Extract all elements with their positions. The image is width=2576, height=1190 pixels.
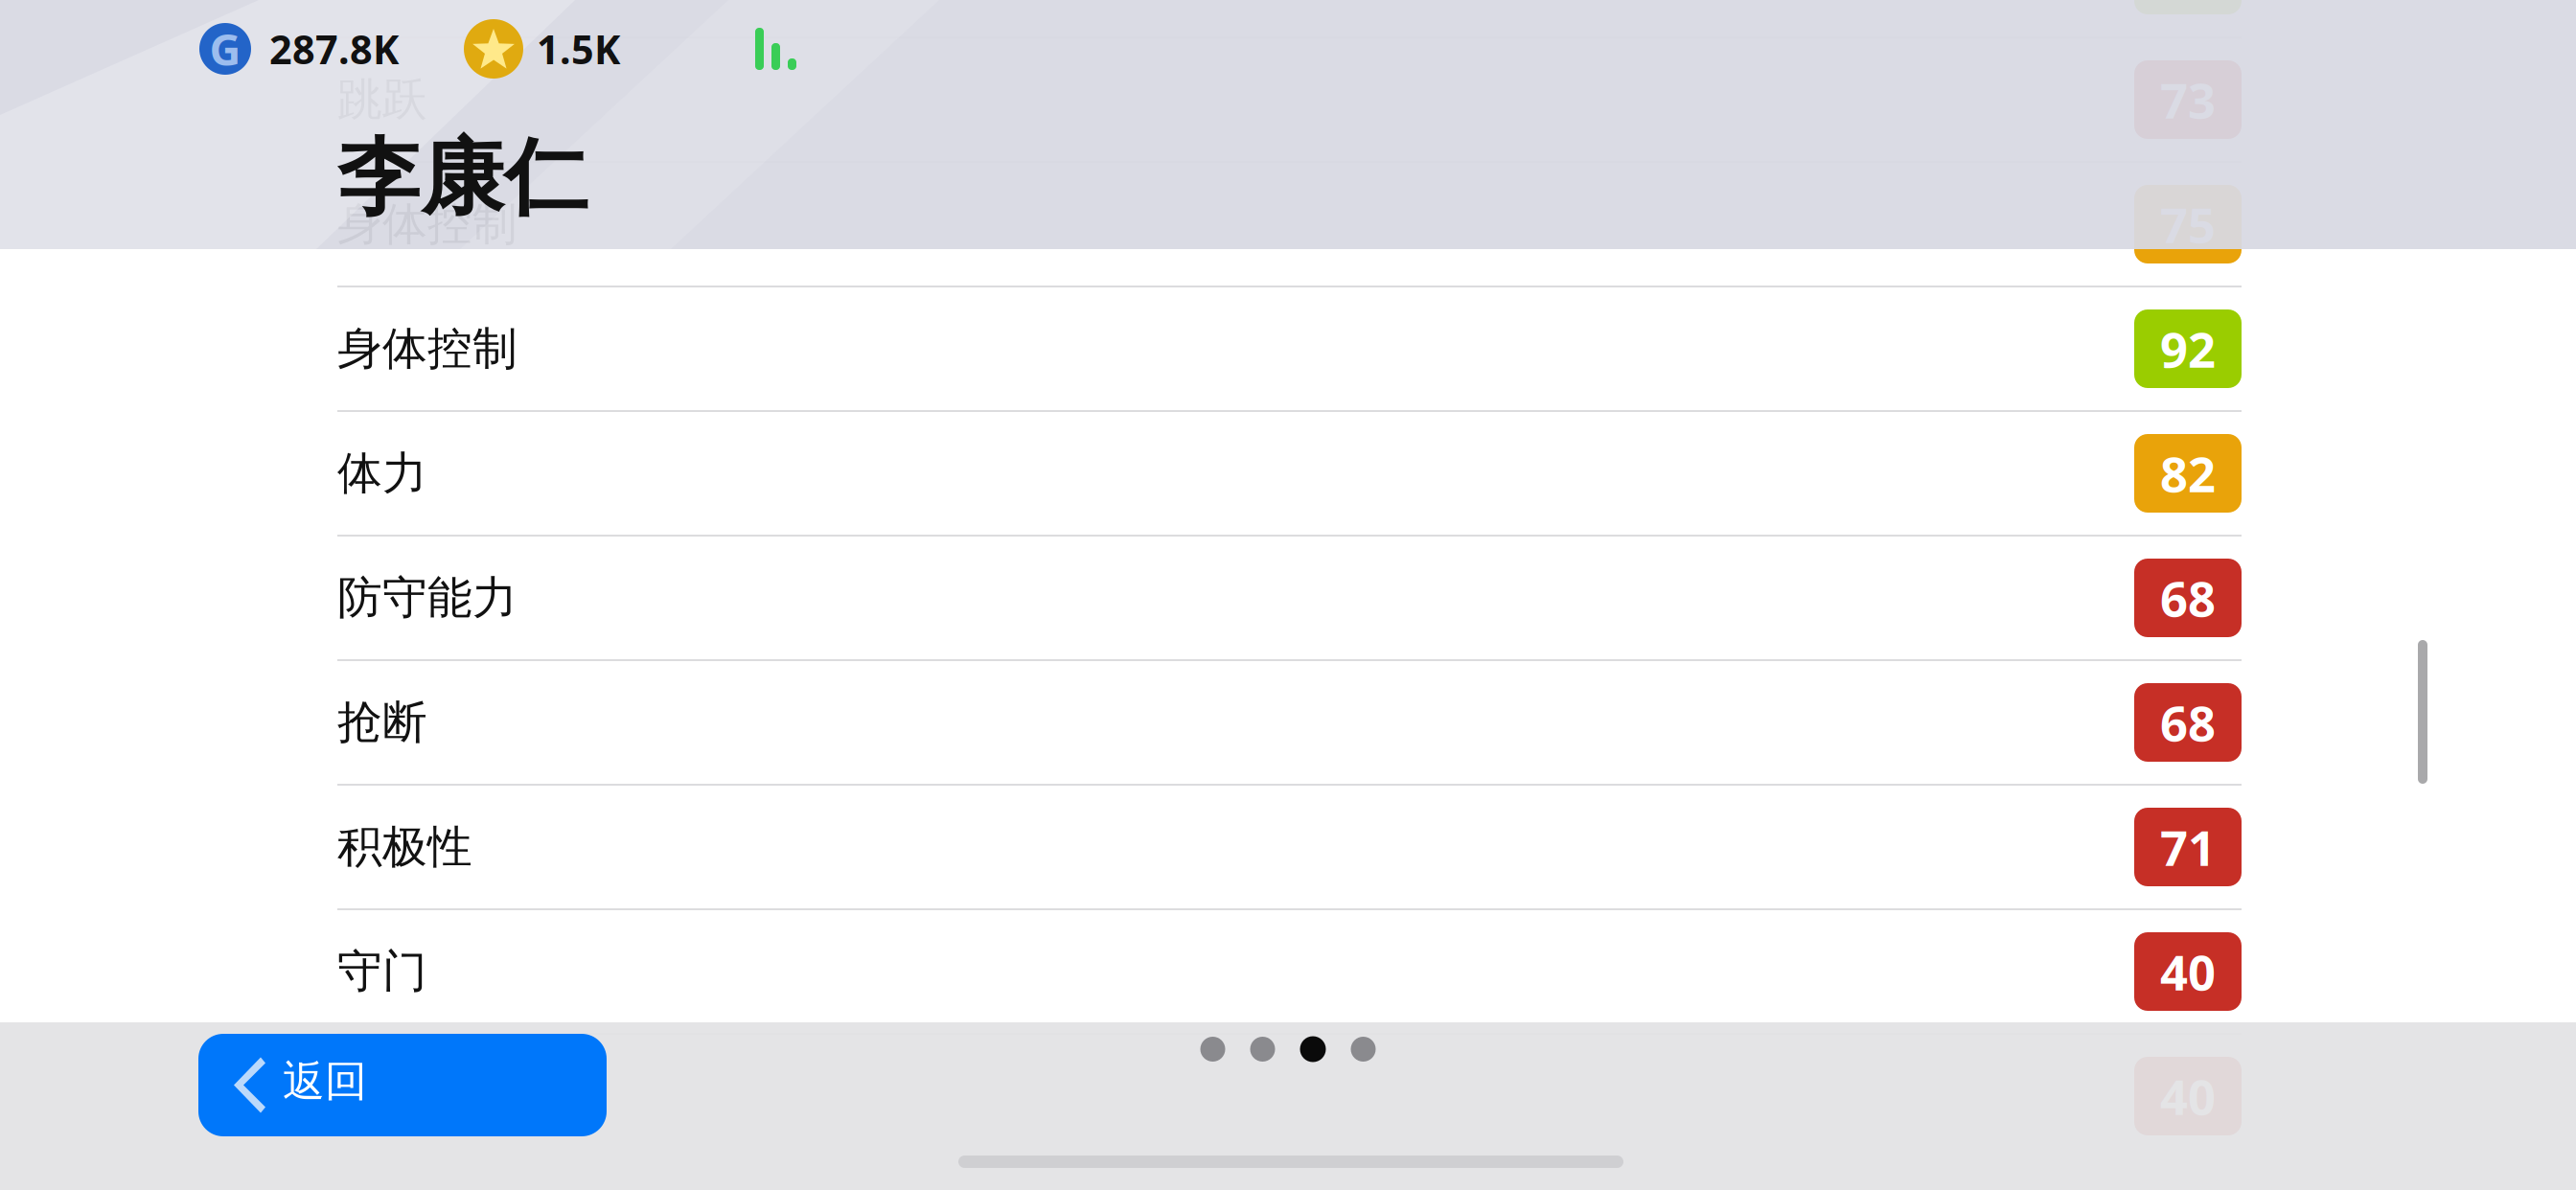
staticText: 82 [2160,441,2216,506]
button[interactable]: Page 4 [1351,1037,1376,1062]
staticText: G [209,20,241,78]
button[interactable]: 返回 [198,1034,607,1136]
button[interactable]: 扑救 [337,1033,2242,1157]
staticText: 287.8K [269,23,399,75]
staticText: 40 [2160,939,2216,1004]
staticText: 积极性 [337,819,472,874]
staticText: 守门 [337,944,427,999]
staticText: 68 [2160,566,2216,630]
button[interactable]: 身体控制 [337,286,2242,410]
staticText: 73 [2160,67,2216,132]
staticText: 返回 [283,1055,367,1107]
button[interactable]: 1.5K [464,19,620,79]
staticText: 防守能力 [337,570,517,625]
staticText: 李康仁 [337,127,587,229]
staticText: 92 [2160,317,2216,381]
button[interactable]: Page 1 [1200,1037,1225,1062]
button[interactable]: 速度 [337,0,2242,36]
button[interactable]: 跳跃 [337,36,2242,161]
button[interactable]: 体力 [337,410,2242,535]
staticText: 75 [2160,192,2216,256]
staticText: 扑救 [337,1069,427,1124]
button[interactable]: 积极性 [337,784,2242,908]
staticText: 抢断 [337,695,427,750]
staticText: 体力 [337,446,427,501]
button[interactable]: 抢断 [337,659,2242,784]
button[interactable]: 守门 [337,908,2242,1033]
button[interactable]: Page 2 [1250,1037,1275,1062]
staticText: 身体控制 [337,197,517,252]
staticText: 跳跃 [337,72,427,127]
staticText: 身体控制 [337,321,517,376]
staticText: 68 [2160,690,2216,755]
button[interactable]: 防守能力 [337,535,2242,659]
button[interactable]: G [199,23,399,75]
staticText: 1.5K [537,23,620,75]
button[interactable]: 身体控制 [337,161,2242,286]
staticText: 40 [2160,1064,2216,1128]
button[interactable]: Page 3, current [1300,1036,1326,1062]
button[interactable]: Form [755,28,796,70]
staticText: 71 [2160,815,2216,879]
